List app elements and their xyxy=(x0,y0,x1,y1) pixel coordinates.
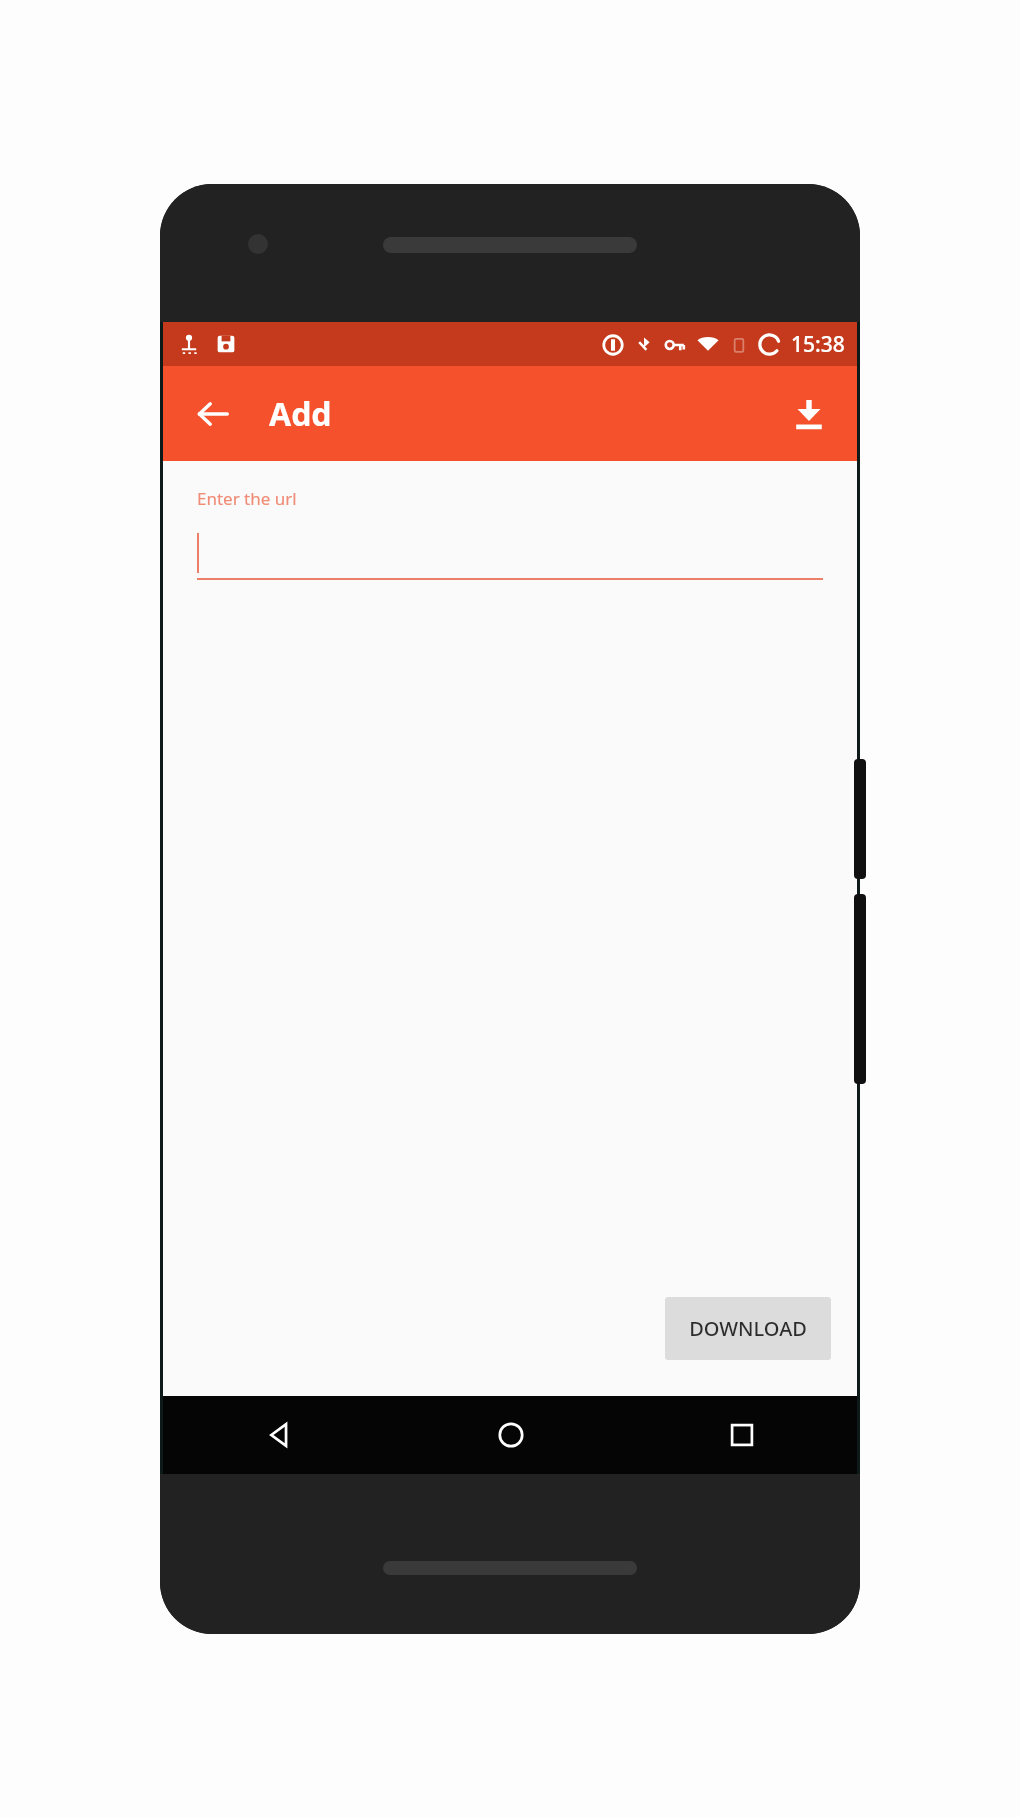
button[interactable]: Download xyxy=(777,382,841,446)
button[interactable]: Back xyxy=(181,382,245,446)
staticText: DOWNLOAD xyxy=(689,1315,807,1342)
button[interactable]: Back xyxy=(163,1396,395,1474)
button[interactable]: DOWNLOAD xyxy=(665,1297,831,1360)
staticText: 15:38 xyxy=(791,330,845,359)
staticText: Add xyxy=(269,392,332,436)
button[interactable]: Home xyxy=(395,1396,626,1474)
button[interactable] xyxy=(197,526,823,580)
button[interactable]: Recent apps xyxy=(626,1396,857,1474)
staticText: Enter the url xyxy=(197,487,297,510)
